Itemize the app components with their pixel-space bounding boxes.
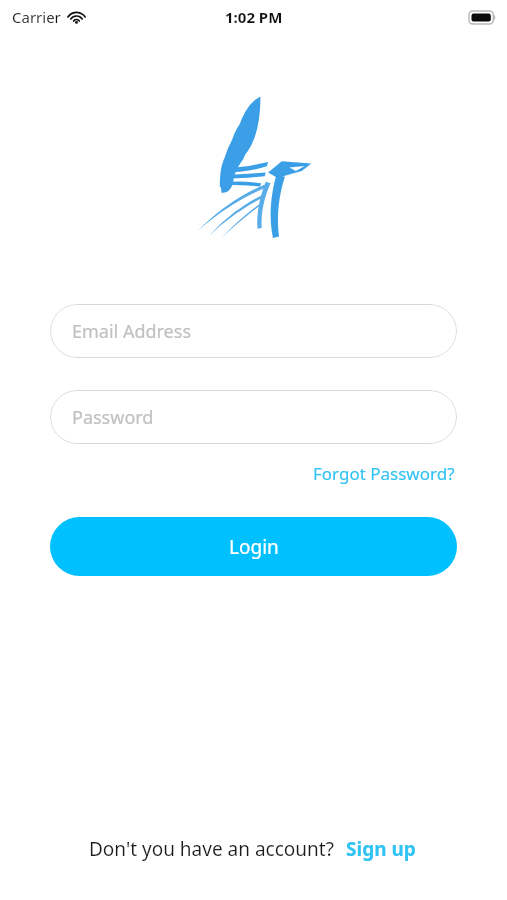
staticText: Login bbox=[229, 534, 279, 560]
button[interactable]: Password bbox=[50, 390, 457, 444]
button[interactable]: Forgot Password? bbox=[311, 458, 457, 489]
staticText: Don't you have an account? bbox=[89, 836, 334, 862]
staticText: Email Address bbox=[72, 319, 192, 344]
button[interactable]: Login bbox=[50, 517, 457, 576]
staticText: Sign up bbox=[346, 836, 416, 862]
button[interactable]: Sign up bbox=[344, 832, 418, 866]
staticText: 1:02 PM bbox=[225, 7, 283, 27]
staticText: Password bbox=[72, 405, 154, 430]
staticText: Forgot Password? bbox=[313, 462, 455, 485]
button[interactable]: Email Address bbox=[50, 304, 457, 358]
staticText: Carrier bbox=[12, 7, 61, 27]
